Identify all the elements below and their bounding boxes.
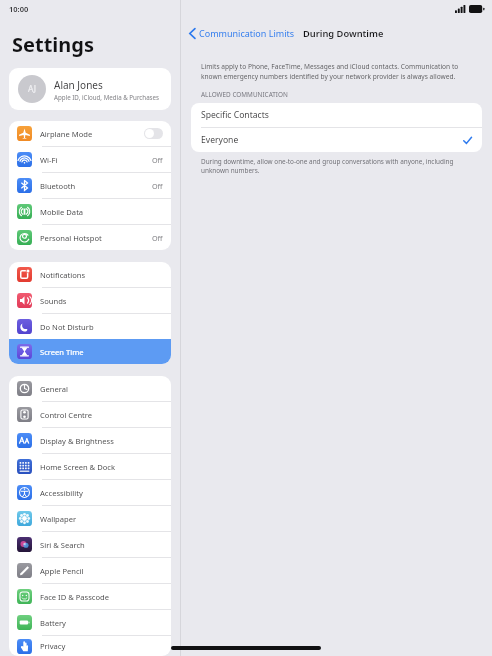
button[interactable]: Wallpaper <box>9 506 171 531</box>
button[interactable]: Personal Hotspot <box>9 225 171 250</box>
button[interactable]: Specific Contacts <box>191 103 482 127</box>
button[interactable]: Notifications <box>9 262 171 287</box>
button[interactable]: Siri & Search <box>9 532 171 557</box>
staticText: 10:00 <box>9 4 29 14</box>
staticText: Personal Hotspot <box>40 233 152 243</box>
button[interactable]: General <box>9 376 171 401</box>
staticText: General <box>40 384 163 394</box>
staticText: Mobile Data <box>40 207 163 217</box>
staticText: Bluetooth <box>40 181 152 191</box>
staticText: Apple ID, iCloud, Media & Purchases <box>54 93 160 101</box>
button[interactable]: Battery <box>9 610 171 635</box>
staticText: Control Centre <box>40 410 163 420</box>
staticText: Screen Time <box>40 347 163 357</box>
button[interactable]: Airplane Mode toggle <box>144 128 163 139</box>
button[interactable]: Communication Limits <box>186 25 298 41</box>
staticText: Do Not Disturb <box>40 322 163 332</box>
staticText: Home Screen & Dock <box>40 462 163 472</box>
staticText: Communication Limits <box>199 27 295 39</box>
button[interactable]: Display & Brightness <box>9 428 171 453</box>
button[interactable]: Do Not Disturb <box>9 314 171 339</box>
staticText: Off <box>152 181 163 191</box>
staticText: During downtime, allow one-to-one and gr… <box>201 157 472 175</box>
button[interactable]: Bluetooth <box>9 173 171 198</box>
button[interactable]: Everyone <box>191 128 482 152</box>
staticText: Display & Brightness <box>40 436 163 446</box>
button[interactable]: Airplane Mode <box>9 121 171 146</box>
button[interactable]: Sounds <box>9 288 171 313</box>
staticText: Siri & Search <box>40 540 163 550</box>
staticText: AJ <box>28 83 37 95</box>
button[interactable]: Accessibility <box>9 480 171 505</box>
staticText: Limits apply to Phone, FaceTime, Message… <box>201 62 472 80</box>
staticText: Battery <box>40 618 163 628</box>
staticText: Sounds <box>40 296 163 306</box>
button[interactable]: Privacy <box>9 636 171 656</box>
staticText: Airplane Mode <box>40 129 144 139</box>
staticText: Alan Jones <box>54 78 103 92</box>
staticText: Privacy <box>40 641 163 651</box>
staticText: Face ID & Passcode <box>40 592 163 602</box>
staticText: Accessibility <box>40 488 163 498</box>
staticText: Off <box>152 233 163 243</box>
button[interactable]: Apple Pencil <box>9 558 171 583</box>
button[interactable]: Wi-Fi <box>9 147 171 172</box>
staticText: ALLOWED COMMUNICATION <box>201 90 288 99</box>
button[interactable]: Screen Time <box>9 339 171 364</box>
staticText: Specific Contacts <box>201 109 269 121</box>
staticText: Notifications <box>40 270 163 280</box>
staticText: Everyone <box>201 134 463 146</box>
staticText: Apple Pencil <box>40 566 163 576</box>
button[interactable]: Home Screen & Dock <box>9 454 171 479</box>
staticText: Wi-Fi <box>40 155 152 165</box>
staticText: Settings <box>12 31 94 58</box>
button[interactable]: Control Centre <box>9 402 171 427</box>
staticText: Wallpaper <box>40 514 163 524</box>
staticText: During Downtime <box>303 27 384 40</box>
staticText: Off <box>152 155 163 165</box>
button[interactable]: AJ <box>9 68 171 110</box>
button[interactable]: Mobile Data <box>9 199 171 224</box>
button[interactable]: Face ID & Passcode <box>9 584 171 609</box>
